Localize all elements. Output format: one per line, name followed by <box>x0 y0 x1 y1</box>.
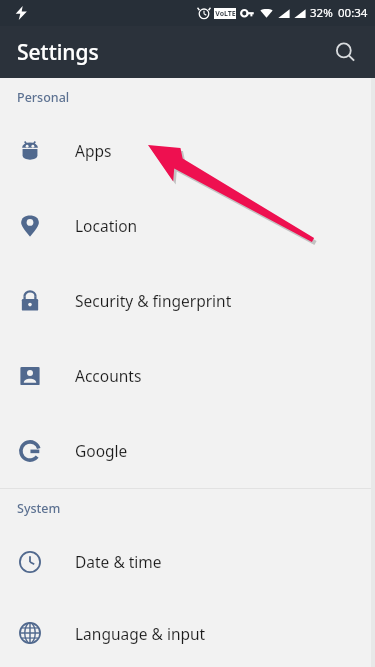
staticText: Language & input <box>75 623 206 644</box>
button[interactable]: Language & input <box>0 599 375 667</box>
button[interactable]: Google <box>0 413 375 488</box>
staticText: Accounts <box>75 365 142 386</box>
button[interactable]: Date & time <box>0 524 375 599</box>
button[interactable]: Security & fingerprint <box>0 263 375 338</box>
button[interactable]: Apps <box>0 113 375 188</box>
staticText: Google <box>75 440 128 461</box>
staticText: Personal <box>17 89 70 106</box>
staticText: Security & fingerprint <box>75 290 232 311</box>
staticText: Settings <box>17 38 99 67</box>
staticText: Date & time <box>75 551 162 572</box>
staticText: System <box>17 500 61 517</box>
staticText: VoLTE <box>215 9 236 19</box>
button[interactable]: Accounts <box>0 338 375 413</box>
staticText: Location <box>75 215 138 236</box>
staticText: 00:34 <box>338 5 368 21</box>
button[interactable]: Location <box>0 188 375 263</box>
staticText: 32% <box>310 5 333 21</box>
button[interactable]: Search <box>325 32 365 72</box>
staticText: Apps <box>75 140 112 161</box>
